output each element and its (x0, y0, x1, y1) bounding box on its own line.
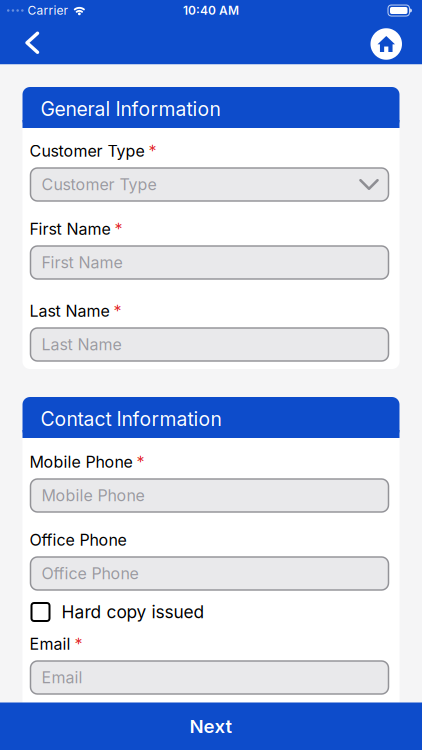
staticText: General Information (40, 98, 220, 120)
button[interactable]: Hard copy issued (22, 602, 399, 622)
staticText: Last Name (29, 302, 109, 320)
button[interactable]: Office Phone (30, 557, 388, 590)
staticText: Carrier (28, 3, 69, 18)
button[interactable]: Email (30, 661, 388, 694)
staticText: * (113, 302, 121, 320)
button[interactable]: Last Name (30, 328, 388, 361)
staticText: Hard copy issued (61, 602, 204, 622)
staticText: * (74, 635, 82, 653)
staticText: Office Phone (29, 531, 126, 549)
staticText: * (136, 453, 144, 471)
button[interactable]: Next (0, 702, 422, 750)
staticText: First Name (41, 253, 122, 272)
staticText: Mobile Phone (41, 486, 144, 505)
staticText: * (148, 142, 156, 160)
button[interactable] (370, 26, 422, 60)
staticText: 10:40 AM (183, 3, 239, 18)
staticText: Customer Type (29, 142, 144, 160)
staticText: Next (189, 715, 232, 737)
button[interactable]: Mobile Phone (30, 479, 388, 512)
staticText: Office Phone (41, 564, 138, 583)
staticText: Email (41, 668, 82, 687)
button[interactable]: First Name (30, 246, 388, 279)
button[interactable]: Customer Type (30, 168, 388, 201)
staticText: * (114, 220, 122, 238)
staticText: Mobile Phone (29, 453, 132, 471)
button[interactable] (0, 33, 49, 52)
staticText: First Name (29, 220, 110, 238)
staticText: Customer Type (41, 175, 156, 194)
staticText: Email (29, 635, 70, 653)
staticText: Contact Information (40, 408, 221, 430)
staticText: Last Name (41, 335, 121, 354)
